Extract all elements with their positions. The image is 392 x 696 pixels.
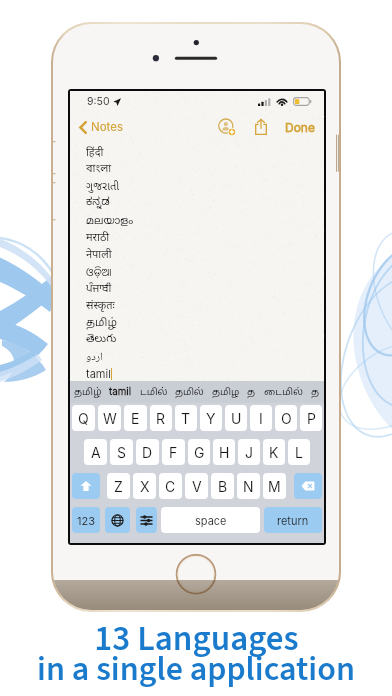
button[interactable]: B (211, 473, 234, 499)
staticText: 123 (77, 514, 95, 527)
button[interactable]: D (136, 439, 159, 465)
button[interactable]: G (188, 439, 210, 465)
button[interactable]: F (162, 439, 185, 465)
staticText: L (295, 444, 303, 461)
button[interactable]: O (275, 405, 297, 431)
button[interactable]: தமில் (174, 383, 205, 401)
staticText: T (181, 410, 191, 427)
staticText: 9:50 (87, 95, 110, 108)
staticText: मराठी (86, 231, 110, 245)
button[interactable]: Done (283, 118, 317, 136)
staticText: नेपाली (86, 248, 112, 262)
button[interactable]: Add people (217, 118, 238, 136)
button[interactable]: தமிழ (211, 383, 241, 401)
staticText: B (218, 478, 228, 495)
staticText: K (269, 444, 279, 461)
staticText: W (103, 410, 117, 427)
staticText: ਪੰਜਾਬੀ (86, 282, 112, 296)
staticText: A (91, 444, 101, 461)
button[interactable]: E (124, 405, 147, 431)
button[interactable]: space (161, 507, 260, 533)
staticText: தமிழ் (86, 316, 117, 330)
staticText: த (311, 386, 320, 398)
staticText: Q (78, 410, 89, 427)
staticText: P (307, 410, 316, 427)
staticText: M (268, 478, 281, 495)
staticText: த (247, 386, 256, 398)
button[interactable]: Shift (72, 473, 100, 499)
button[interactable]: டமில் (139, 383, 169, 401)
staticText: S (117, 444, 126, 461)
staticText: ગુજરાતી (86, 180, 120, 194)
staticText: G (194, 444, 205, 461)
button[interactable]: த (310, 383, 321, 401)
button[interactable]: Q (72, 405, 95, 431)
button[interactable]: 123 (72, 507, 100, 533)
staticText: O (281, 410, 292, 427)
button[interactable]: X (133, 473, 156, 499)
button[interactable]: Y (200, 405, 222, 431)
staticText: space (195, 514, 227, 527)
button[interactable]: Share (251, 118, 271, 136)
button[interactable]: M (263, 473, 286, 499)
staticText: டமில் (140, 386, 168, 398)
button[interactable]: N (237, 473, 260, 499)
button[interactable]: U (225, 405, 247, 431)
button[interactable]: த (246, 383, 257, 401)
staticText: മലയാളം (86, 214, 134, 228)
button[interactable]: V (185, 473, 208, 499)
staticText: தமிழ (212, 386, 240, 398)
staticText: Z (114, 478, 123, 495)
staticText: தமிழ் (74, 386, 102, 398)
staticText: N (243, 478, 254, 495)
staticText: Done (285, 120, 315, 134)
button[interactable]: Notes (77, 118, 125, 136)
staticText: اردو (86, 348, 103, 365)
button[interactable]: Backspace (294, 473, 322, 499)
staticText: D (142, 444, 153, 461)
button[interactable]: S (110, 439, 133, 465)
staticText: বাংলা (86, 162, 112, 177)
button[interactable]: Change keyboard (105, 507, 130, 533)
staticText: 13 Languages (94, 614, 299, 664)
staticText: F (169, 444, 178, 461)
staticText: V (192, 478, 202, 495)
staticText: J (245, 444, 253, 461)
button[interactable]: R (150, 405, 172, 431)
button[interactable]: Z (107, 473, 130, 499)
button[interactable]: தமிழ் (73, 383, 103, 401)
staticText: C (165, 478, 176, 495)
staticText: संस्कृतः (86, 299, 115, 313)
staticText: H (219, 444, 230, 461)
button[interactable]: L (288, 439, 310, 465)
staticText: ಕನ್ನಡ (86, 196, 110, 211)
button[interactable]: K (263, 439, 285, 465)
button[interactable]: P (300, 405, 322, 431)
button[interactable]: tamil (108, 383, 133, 401)
button[interactable]: J (238, 439, 260, 465)
button[interactable]: C (159, 473, 182, 499)
staticText: Y (206, 410, 216, 427)
staticText: हिंदी (86, 146, 104, 160)
staticText: return (277, 514, 309, 527)
staticText: X (140, 478, 150, 495)
staticText: ଓଡ଼ିଆ (86, 264, 112, 279)
staticText: டைமில் (264, 386, 304, 398)
staticText: E (131, 410, 140, 427)
staticText: తెలుగు (86, 332, 117, 347)
staticText: U (231, 410, 242, 427)
staticText: R (156, 410, 166, 427)
button[interactable]: W (98, 405, 121, 431)
button[interactable]: I (250, 405, 272, 431)
button[interactable]: T (175, 405, 197, 431)
staticText: Notes (91, 120, 123, 134)
button[interactable]: A (84, 439, 107, 465)
staticText: tamil (109, 386, 132, 398)
button[interactable]: H (213, 439, 235, 465)
button[interactable]: Keyboard settings (136, 507, 157, 533)
button[interactable]: டைமில் (263, 383, 305, 401)
staticText: in a single application (37, 645, 355, 693)
button[interactable]: return (264, 507, 322, 533)
staticText: tamil (86, 367, 111, 380)
staticText: I (259, 410, 263, 427)
